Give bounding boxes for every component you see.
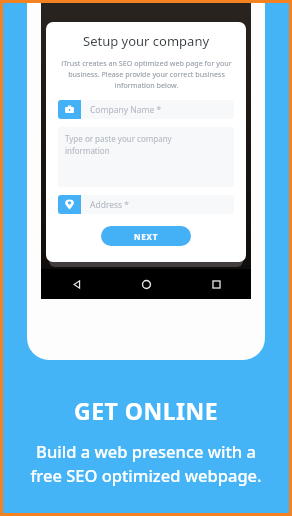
- staticText: iTrust creates an SEO optimized web page…: [61, 58, 232, 90]
- staticText: NEXT: [134, 231, 159, 242]
- button[interactable]: Type or paste your company information: [58, 127, 234, 187]
- staticText: Build a web presence with a free SEO opt…: [30, 440, 262, 487]
- other: Address: [64, 199, 75, 210]
- staticText: Type or paste your company information: [65, 133, 172, 157]
- staticText: GET ONLINE: [74, 395, 219, 426]
- button[interactable]: Address: [58, 195, 234, 214]
- button[interactable]: Home: [111, 269, 181, 299]
- button[interactable]: Company: [58, 100, 234, 119]
- button[interactable]: Recents: [181, 269, 251, 299]
- staticText: Company Name *: [90, 104, 162, 116]
- other: Company: [64, 104, 75, 115]
- staticText: Setup your company: [83, 32, 210, 50]
- staticText: Address *: [90, 199, 130, 211]
- button[interactable]: Back: [41, 269, 111, 299]
- button[interactable]: NEXT: [101, 226, 191, 246]
